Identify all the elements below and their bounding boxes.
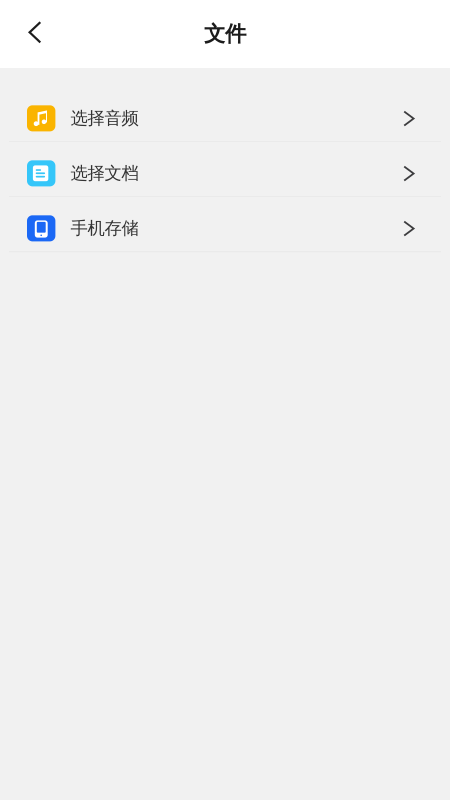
staticText: 选择音频 [70,108,138,129]
staticText: 文件 [204,21,246,47]
button[interactable]: 选择文档 [0,142,450,197]
button[interactable]: Back [0,0,60,68]
button[interactable]: 选择音频 [0,87,450,142]
staticText: 选择文档 [70,163,138,184]
button[interactable]: 手机存储 [0,197,450,252]
staticText: 手机存储 [70,218,138,239]
